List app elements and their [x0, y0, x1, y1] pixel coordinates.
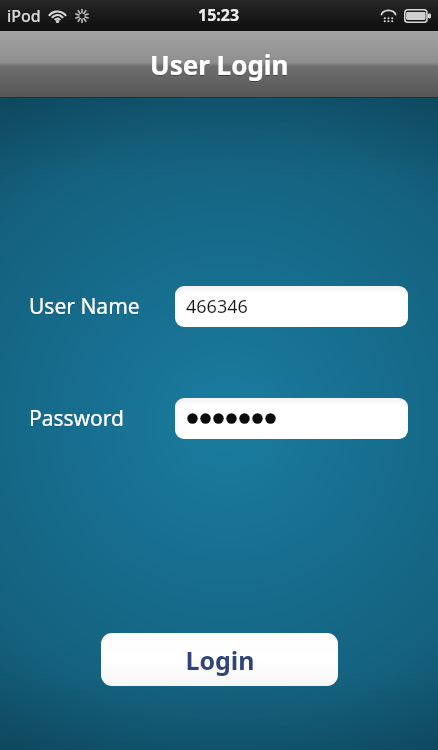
staticText: User Name — [29, 292, 140, 321]
staticText: 15:23 — [198, 4, 240, 26]
staticText: Password — [29, 405, 124, 434]
staticText: User Name — [29, 293, 140, 322]
staticText: Login — [185, 643, 255, 677]
staticText: User Login — [150, 48, 289, 83]
staticText: 466346 — [186, 294, 248, 319]
button[interactable]: Login — [101, 633, 338, 686]
staticText: User Login — [150, 47, 289, 82]
button[interactable]: 466346 — [175, 286, 408, 327]
staticText: Password — [29, 404, 124, 433]
staticText: iPod — [7, 5, 41, 27]
button[interactable] — [175, 398, 408, 439]
